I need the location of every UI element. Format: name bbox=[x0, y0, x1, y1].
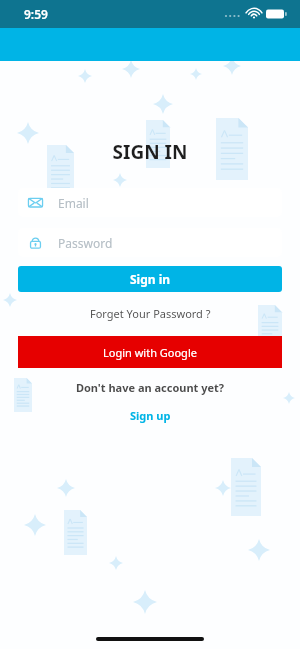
staticText: Don't have an account yet? bbox=[0, 380, 300, 395]
staticText: Forget Your Password ? bbox=[90, 306, 211, 321]
button[interactable]: Login with Google bbox=[18, 336, 282, 368]
staticText: SIGN IN bbox=[0, 139, 300, 165]
button[interactable]: Email bbox=[18, 188, 282, 217]
button[interactable]: Forget Your Password ? bbox=[82, 304, 219, 323]
button[interactable]: Sign in bbox=[18, 266, 282, 292]
button[interactable]: Password bbox=[18, 228, 282, 257]
staticText: Sign in bbox=[130, 271, 171, 287]
button[interactable]: Sign up bbox=[120, 406, 181, 425]
staticText: Sign up bbox=[130, 408, 171, 423]
staticText: Login with Google bbox=[103, 345, 197, 360]
staticText: Password bbox=[58, 235, 113, 251]
staticText: Email bbox=[58, 195, 89, 211]
staticText: 9:59 bbox=[24, 6, 48, 22]
